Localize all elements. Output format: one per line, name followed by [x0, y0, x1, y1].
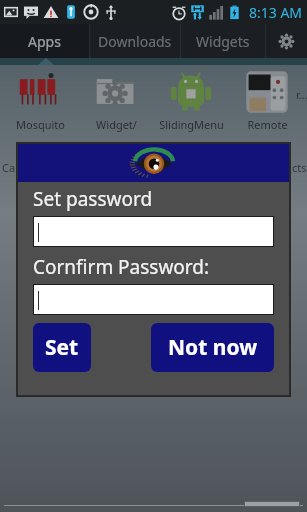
button[interactable]: Apps [0, 24, 89, 58]
staticText: SlidingMenu [159, 117, 224, 132]
staticText: Widget/ [96, 117, 137, 132]
staticText: Downloads [98, 32, 172, 51]
staticText: cts [292, 160, 307, 175]
button[interactable] [34, 217, 273, 246]
button[interactable] [34, 285, 273, 314]
button[interactable]: Remote [231, 69, 303, 132]
staticText: Set password [33, 186, 153, 212]
staticText: Not now [168, 333, 258, 362]
button[interactable]: Widgets [181, 24, 265, 58]
staticText: Mosquito [16, 117, 65, 132]
staticText: Cornfirm Password: [33, 254, 210, 280]
button[interactable]: Not now [151, 323, 274, 372]
staticText: Remote [247, 117, 288, 132]
staticText: Ca [2, 160, 16, 175]
staticText: Set [45, 333, 79, 362]
staticText: Apps [28, 32, 61, 51]
staticText: 8:13 AM [249, 3, 303, 22]
button[interactable]: Downloads [90, 24, 180, 58]
button[interactable]: Mosquito [4, 69, 76, 132]
staticText: Widgets [196, 32, 250, 51]
staticText: r… [296, 87, 307, 102]
button[interactable]: Widget/ [80, 69, 152, 132]
button[interactable]: Set [33, 323, 91, 372]
button[interactable]: Settings [266, 24, 307, 58]
button[interactable]: SlidingMenu [155, 69, 227, 132]
